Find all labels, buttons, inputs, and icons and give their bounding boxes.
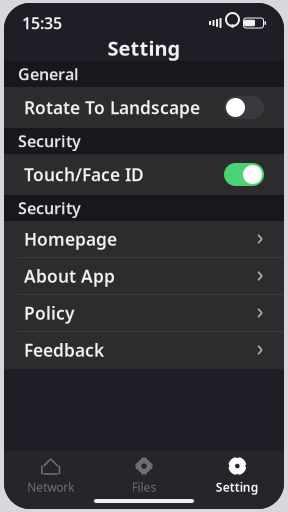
staticText: Security xyxy=(18,130,81,152)
button[interactable]: Homepage xyxy=(4,221,284,258)
staticText: Homepage xyxy=(24,227,117,250)
button[interactable]: Rotate To Landscape xyxy=(4,87,284,128)
staticText: Network xyxy=(27,479,74,495)
staticText: About App xyxy=(24,264,115,287)
button[interactable]: About App xyxy=(4,258,284,295)
staticText: Security xyxy=(18,197,81,219)
button[interactable]: Setting xyxy=(191,455,284,497)
staticText: Setting xyxy=(216,479,259,495)
button[interactable]: Network xyxy=(4,455,97,497)
button[interactable]: Policy xyxy=(4,295,284,332)
staticText: Feedback xyxy=(24,338,104,361)
staticText: Files xyxy=(131,479,156,495)
staticText: 15:35 xyxy=(22,12,62,34)
staticText: Rotate To Landscape xyxy=(24,96,200,119)
button[interactable]: Touch/Face ID xyxy=(4,154,284,195)
button[interactable]: Feedback xyxy=(4,332,284,369)
staticText: Policy xyxy=(24,301,74,324)
staticText: Setting xyxy=(107,35,180,61)
button[interactable]: Files xyxy=(97,455,191,497)
button[interactable]: Setting xyxy=(4,35,284,61)
staticText: General xyxy=(18,63,79,85)
staticText: Touch/Face ID xyxy=(24,163,144,186)
